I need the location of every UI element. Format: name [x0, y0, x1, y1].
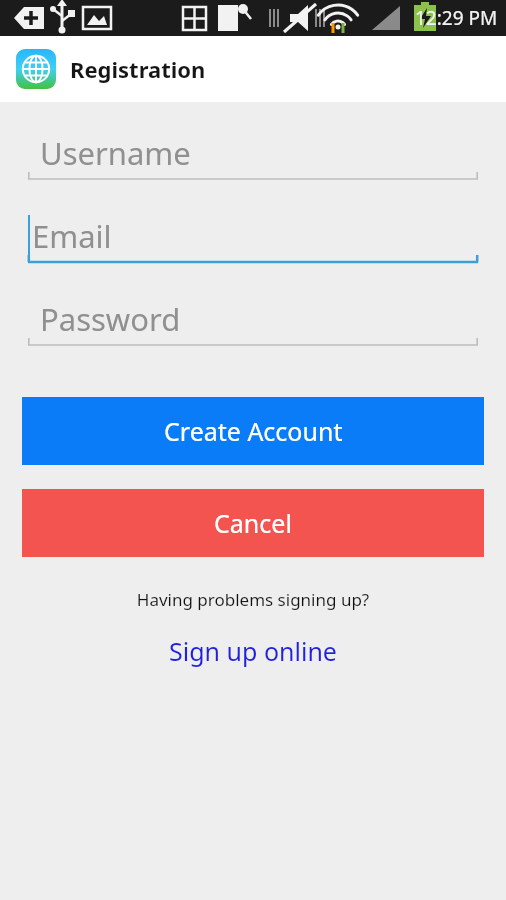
button[interactable]: Password [28, 291, 478, 347]
staticText: Registration [70, 54, 206, 84]
staticText: Create Account [164, 414, 343, 448]
button[interactable]: Create Account [22, 397, 484, 465]
staticText: Password [40, 298, 181, 340]
button[interactable]: Cancel [22, 489, 484, 557]
staticText: 12:29 PM [415, 5, 498, 31]
staticText: Having problems signing up? [0, 588, 506, 611]
button[interactable]: Sign up online [169, 634, 337, 668]
button[interactable]: Username [28, 125, 478, 181]
button[interactable]: Email [28, 208, 478, 264]
other: App icon [16, 49, 56, 89]
staticText: Email [32, 215, 112, 257]
staticText: Cancel [214, 506, 292, 540]
staticText: Username [40, 132, 191, 174]
